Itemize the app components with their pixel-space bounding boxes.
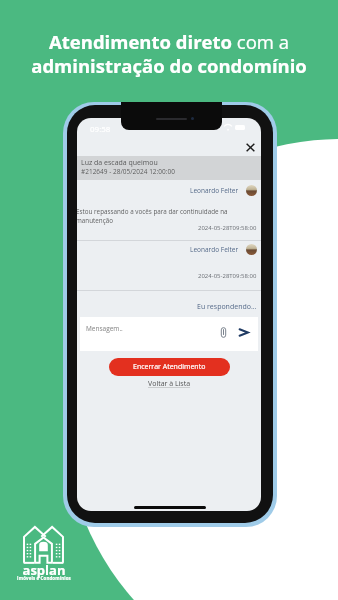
staticText: #212649 - 28/05/2024 12:00:00 <box>81 167 175 176</box>
button[interactable]: Encerrar Atendimento <box>109 358 230 376</box>
staticText: com a <box>232 29 290 54</box>
staticText: Estou repassando a vocês para dar contin… <box>77 207 228 225</box>
staticText: 2024-05-28T09:58:00 <box>198 224 257 232</box>
staticText: Luz da escada queimou <box>81 158 158 168</box>
button[interactable]: Enviar mensagem <box>237 326 250 339</box>
staticText: asplan <box>16 561 72 579</box>
staticText: administração do condomínio <box>0 53 338 78</box>
button[interactable]: Anexar arquivo <box>218 327 229 338</box>
staticText: Leonardo Felter <box>190 186 239 195</box>
button[interactable]: Fechar <box>245 142 256 153</box>
staticText: Atendimento direto <box>49 29 232 54</box>
staticText: 09:58 <box>90 123 111 134</box>
staticText: Leonardo Felter <box>190 245 239 254</box>
button[interactable]: Mensagem.. <box>80 317 258 351</box>
staticText: Encerrar Atendimento <box>133 362 206 372</box>
staticText: 2024-05-28T09:58:00 <box>198 272 257 280</box>
button[interactable]: Voltar à Lista <box>148 379 191 389</box>
staticText: Mensagem.. <box>86 324 123 333</box>
staticText: Eu respondendo... <box>197 302 257 312</box>
staticText: Imóveis e Condomínios <box>16 575 72 581</box>
